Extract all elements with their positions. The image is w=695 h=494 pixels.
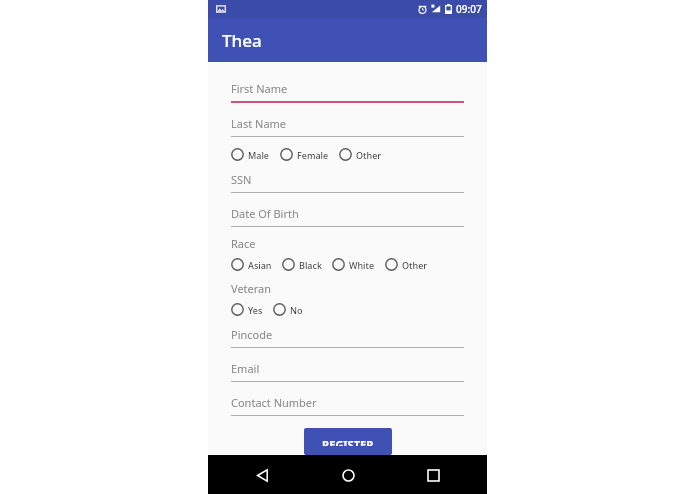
staticText: 09:07 xyxy=(456,2,482,16)
staticText: REGISTER xyxy=(322,437,374,446)
button[interactable]: Asian xyxy=(231,258,282,271)
staticText: Asian xyxy=(248,259,272,271)
button[interactable]: Date Of Birth xyxy=(231,206,464,227)
staticText: Veteran xyxy=(231,281,272,296)
button[interactable]: Pincode xyxy=(231,327,464,348)
button[interactable]: Black xyxy=(282,258,332,271)
button[interactable]: Last Name xyxy=(231,116,464,137)
button[interactable]: Yes xyxy=(231,303,273,316)
staticText: Black xyxy=(299,259,322,271)
button[interactable]: Email xyxy=(231,361,464,382)
staticText: Pincode xyxy=(231,327,273,342)
button[interactable]: No xyxy=(273,303,313,316)
staticText: Other xyxy=(402,259,428,271)
staticText: First Name xyxy=(231,81,288,96)
button[interactable]: Recent apps xyxy=(419,461,447,489)
staticText: Date Of Birth xyxy=(231,206,299,221)
button[interactable]: White xyxy=(332,258,385,271)
button[interactable]: Home xyxy=(334,461,362,489)
button[interactable]: First Name xyxy=(231,81,464,103)
staticText: Last Name xyxy=(231,116,287,131)
staticText: No xyxy=(290,304,303,316)
button[interactable]: Contact Number xyxy=(231,395,464,416)
button[interactable]: Other xyxy=(339,148,392,161)
staticText: SSN xyxy=(231,172,252,187)
staticText: Male xyxy=(248,149,270,161)
staticText: Other xyxy=(356,149,382,161)
staticText: White xyxy=(349,259,375,271)
staticText: Thea xyxy=(222,29,262,52)
button[interactable]: Other xyxy=(385,258,438,271)
staticText: Race xyxy=(231,236,256,251)
button[interactable]: REGISTER xyxy=(304,428,392,455)
staticText: Female xyxy=(297,149,329,161)
staticText: Yes xyxy=(248,304,263,316)
staticText: Contact Number xyxy=(231,395,317,410)
button[interactable]: Back xyxy=(248,461,276,489)
button[interactable]: Female xyxy=(280,148,339,161)
button[interactable]: Male xyxy=(231,148,280,161)
button[interactable]: SSN xyxy=(231,172,464,193)
staticText: Email xyxy=(231,361,260,376)
